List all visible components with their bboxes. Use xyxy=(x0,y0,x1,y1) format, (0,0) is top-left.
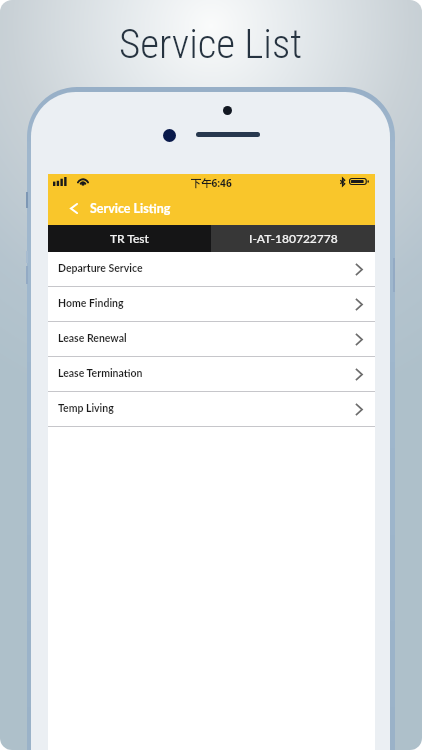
button[interactable]: Temp Living xyxy=(48,392,375,426)
staticText: Temp Living xyxy=(58,402,114,415)
button[interactable]: Lease Termination xyxy=(48,357,375,391)
staticText: 下午6:46 xyxy=(191,176,232,190)
staticText: TR Test xyxy=(110,231,149,245)
staticText: Lease Renewal xyxy=(58,332,127,345)
button[interactable]: Departure Service xyxy=(48,252,375,286)
button[interactable]: Home Finding xyxy=(48,287,375,321)
button[interactable]: I-AT-180722778 xyxy=(211,225,375,252)
button[interactable]: Lease Renewal xyxy=(48,322,375,356)
staticText: Service Listing xyxy=(90,201,171,216)
button[interactable]: TR Test xyxy=(48,225,211,252)
staticText: Lease Termination xyxy=(58,367,143,380)
staticText: Home Finding xyxy=(58,297,124,310)
staticText: I-AT-180722778 xyxy=(249,231,338,245)
staticText: Service List xyxy=(119,20,303,68)
other: Back xyxy=(70,203,78,214)
staticText: Departure Service xyxy=(58,262,143,275)
button[interactable]: Back xyxy=(48,192,375,225)
